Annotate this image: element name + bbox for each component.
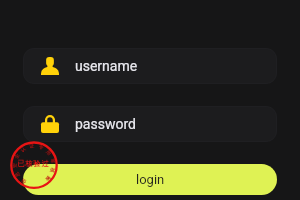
staticText: password <box>75 116 136 132</box>
other: Approved seal <box>9 140 59 190</box>
button[interactable]: username <box>23 48 277 84</box>
staticText: username <box>75 58 138 74</box>
button[interactable]: password <box>23 106 277 142</box>
button[interactable]: login <box>23 164 277 195</box>
staticText: login <box>136 172 165 187</box>
